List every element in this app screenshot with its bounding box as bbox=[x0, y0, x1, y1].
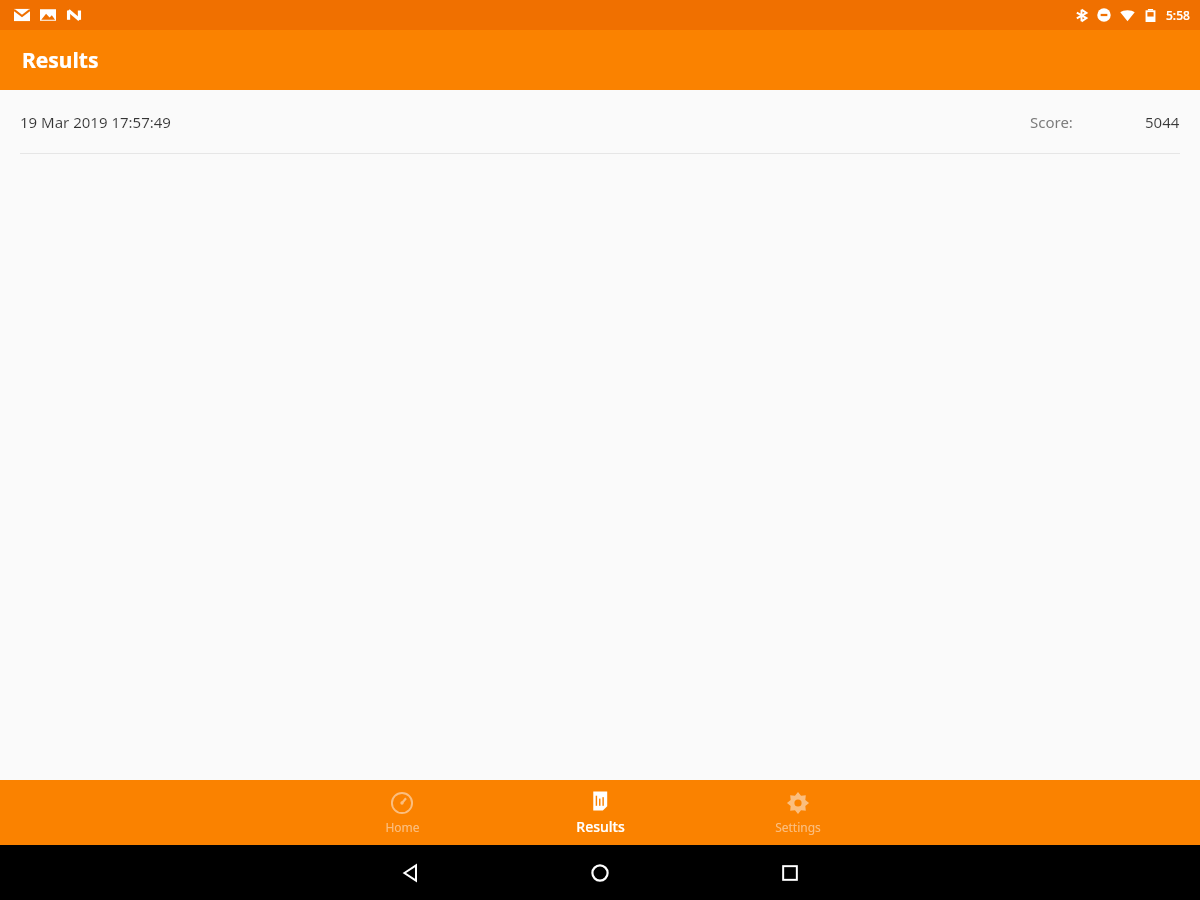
button[interactable]: Results bbox=[501, 783, 699, 842]
button[interactable]: Recent apps bbox=[695, 845, 885, 900]
staticText: Score: bbox=[1030, 112, 1073, 132]
button[interactable]: Home bbox=[303, 785, 501, 841]
staticText: Results bbox=[576, 817, 625, 836]
button[interactable]: Back bbox=[315, 845, 505, 900]
staticText: 5044 bbox=[1145, 112, 1180, 132]
staticText: 19 Mar 2019 17:57:49 bbox=[20, 112, 171, 132]
button[interactable]: 19 Mar 2019 17:57:49 bbox=[0, 90, 1200, 154]
staticText: Settings bbox=[775, 819, 821, 835]
button[interactable]: Settings bbox=[699, 785, 897, 841]
button[interactable]: Home bbox=[505, 845, 695, 900]
staticText: Results bbox=[22, 46, 99, 75]
staticText: Home bbox=[385, 819, 420, 835]
staticText: 5:58 bbox=[1166, 7, 1190, 23]
